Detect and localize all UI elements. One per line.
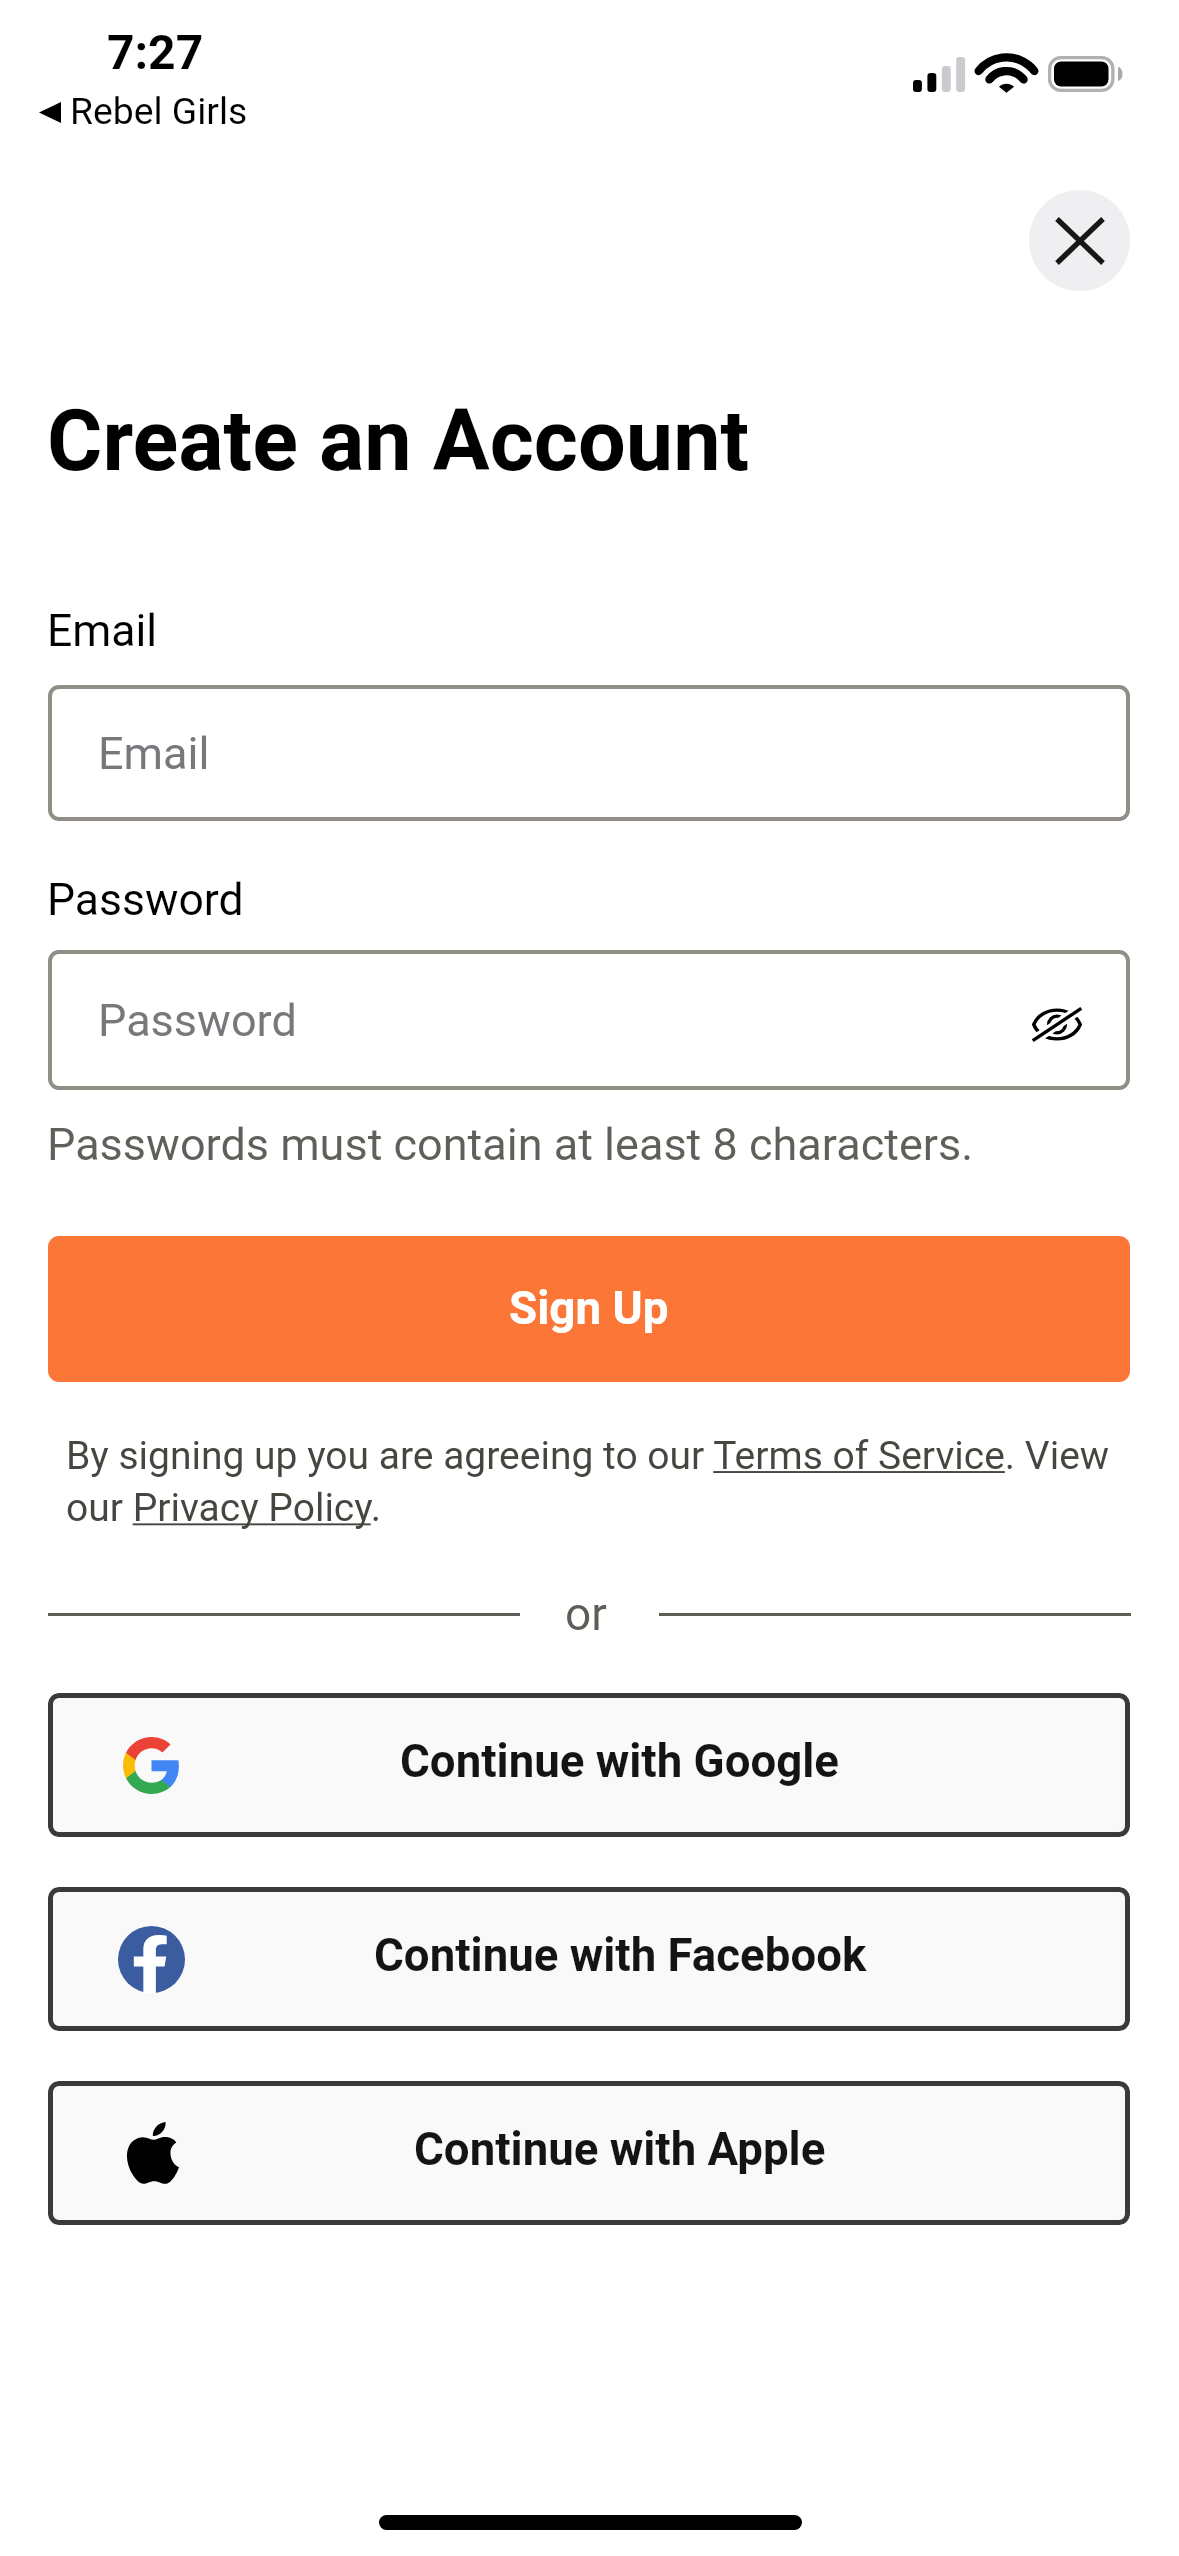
staticText: Password — [47, 874, 244, 926]
button[interactable]: Password — [48, 950, 1130, 1090]
staticText: Rebel Girls — [70, 89, 248, 133]
button[interactable]: Email — [48, 685, 1130, 821]
staticText: or — [565, 1587, 607, 1641]
button[interactable]: Continue with Google — [48, 1693, 1130, 1837]
button[interactable]: Continue with Facebook — [48, 1887, 1130, 2031]
staticText: By signing up you are agreeing to our Te… — [66, 1433, 1136, 1531]
staticText: Email — [98, 727, 210, 780]
staticText: Continue with Facebook — [374, 1929, 867, 1982]
staticText: Continue with Apple — [414, 2123, 826, 2176]
button[interactable]: Close — [1029, 190, 1130, 291]
staticText: Create an Account — [47, 392, 750, 491]
staticText: Sign Up — [509, 1282, 669, 1336]
staticText: Email — [47, 605, 158, 657]
button[interactable]: Sign Up — [48, 1236, 1130, 1382]
staticText: Password — [98, 994, 297, 1047]
button[interactable]: Show password — [1007, 974, 1107, 1074]
button[interactable]: By signing up you are agreeing to our Te… — [66, 1433, 1136, 1531]
staticText: Continue with Google — [400, 1735, 840, 1788]
staticText: 7:27 — [107, 24, 204, 80]
button[interactable]: Continue with Apple — [48, 2081, 1130, 2225]
staticText: Passwords must contain at least 8 charac… — [47, 1118, 974, 1171]
